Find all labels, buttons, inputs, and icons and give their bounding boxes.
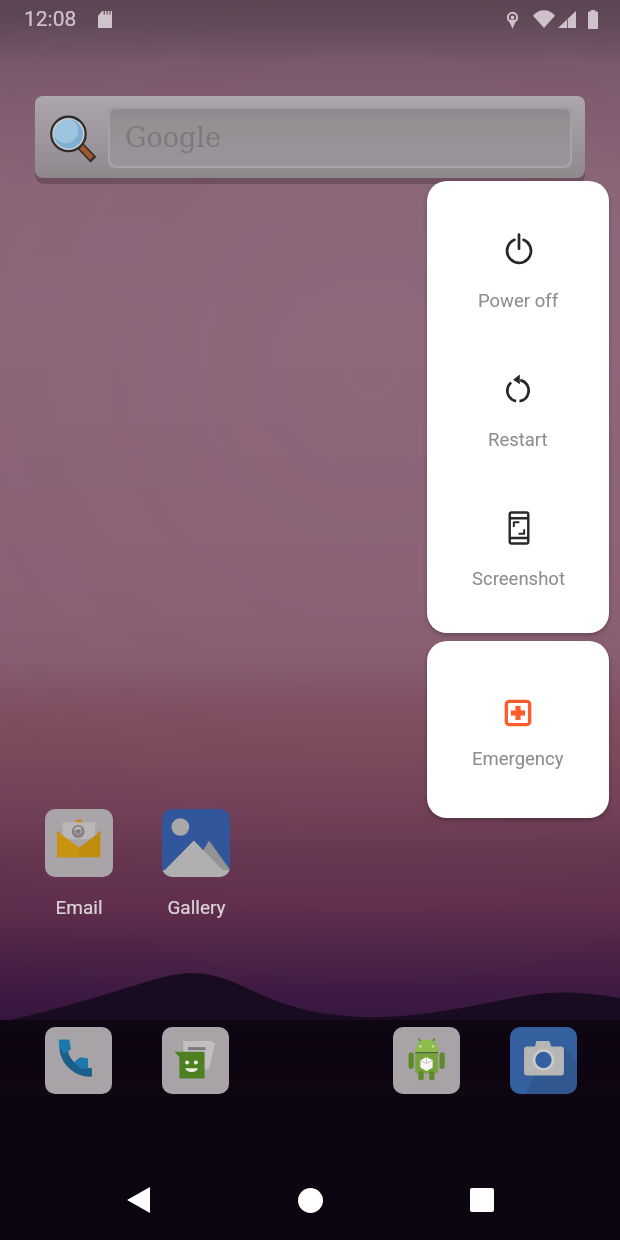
button[interactable]: Power off — [427, 202, 609, 341]
staticText: Emergency — [472, 748, 564, 770]
staticText: Email — [55, 896, 103, 918]
button[interactable]: Google — [35, 96, 585, 178]
button[interactable]: Emergency — [427, 641, 609, 818]
button[interactable]: Screenshot — [427, 480, 609, 619]
staticText: Screenshot — [472, 568, 565, 590]
button[interactable]: App — [45, 1027, 112, 1094]
button[interactable]: Restart — [427, 341, 609, 480]
staticText: Restart — [488, 429, 548, 451]
button[interactable]: Gallery — [151, 809, 241, 918]
staticText: Gallery — [167, 896, 226, 918]
staticText: Power off — [478, 290, 559, 312]
button[interactable]: App — [510, 1027, 577, 1094]
staticText: 12:08 — [24, 7, 77, 32]
button[interactable]: App — [393, 1027, 460, 1094]
button[interactable]: App — [162, 1027, 229, 1094]
staticText: Google — [125, 122, 221, 153]
button[interactable]: Email — [34, 809, 124, 918]
button[interactable]: Home — [266, 1160, 354, 1240]
button[interactable]: Back — [94, 1160, 182, 1240]
button[interactable]: Recents — [438, 1160, 526, 1240]
